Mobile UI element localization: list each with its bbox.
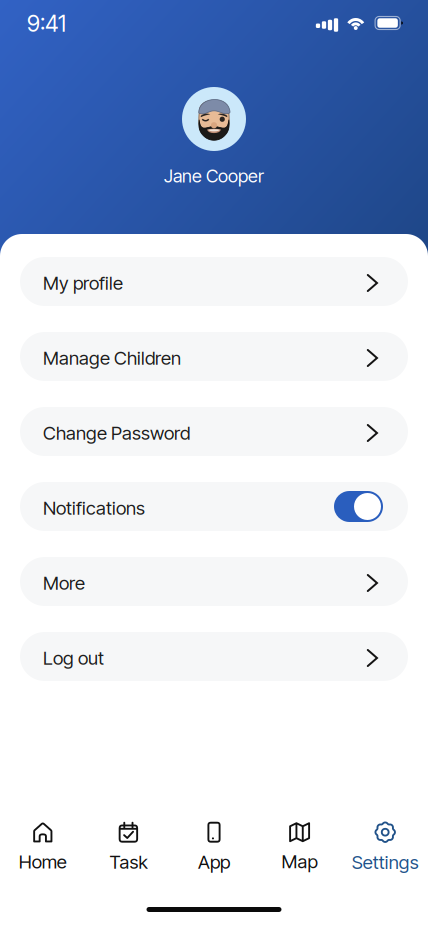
staticText: Notifications [43,497,145,519]
button[interactable]: Home [0,818,86,878]
staticText: More [43,572,85,594]
staticText: Task [109,851,147,873]
button[interactable]: Task [86,818,171,878]
button[interactable]: My profile [20,257,408,306]
button[interactable]: Settings [342,818,428,878]
staticText: Jane Cooper [164,165,264,187]
staticText: My profile [43,272,123,294]
staticText: 9:41 [27,10,66,37]
staticText: Home [19,850,67,873]
button[interactable]: Map [257,818,342,878]
staticText: Log out [43,647,104,669]
staticText: Map [282,850,318,873]
staticText: App [198,851,230,873]
button[interactable]: Notifications [20,482,408,531]
button[interactable]: Log out [20,632,408,681]
staticText: Manage Children [43,347,181,369]
staticText: Change Password [43,422,190,444]
button[interactable]: More [20,557,408,606]
button[interactable]: Change Password [20,407,408,456]
button[interactable]: Manage Children [20,332,408,381]
button[interactable]: App [171,818,257,878]
staticText: Settings [352,851,419,874]
